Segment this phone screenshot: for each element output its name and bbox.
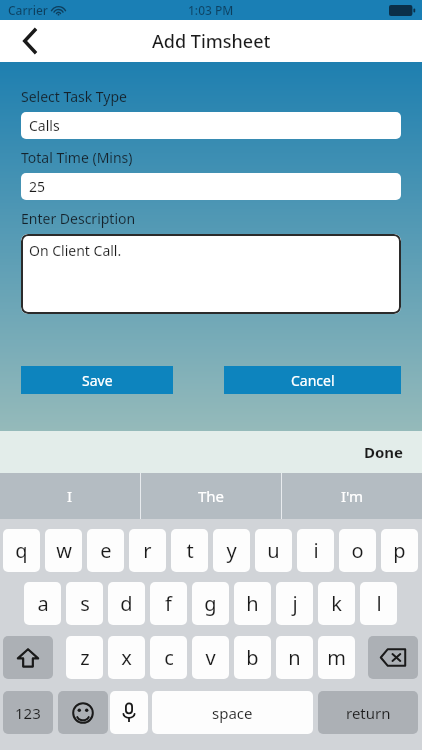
staticText: o bbox=[351, 537, 364, 564]
staticText: x bbox=[121, 644, 132, 671]
button[interactable]: o bbox=[339, 529, 376, 572]
button[interactable]: Back bbox=[10, 21, 50, 61]
staticText: m bbox=[327, 644, 346, 671]
staticText: k bbox=[331, 590, 342, 617]
staticText: q bbox=[15, 537, 28, 564]
button[interactable]: return bbox=[318, 691, 418, 734]
staticText: u bbox=[267, 537, 280, 564]
button[interactable]: I bbox=[0, 473, 140, 519]
button[interactable]: Shift bbox=[3, 636, 53, 679]
button[interactable]: Calls bbox=[21, 112, 401, 139]
staticText: Carrier bbox=[8, 2, 48, 18]
button[interactable]: space bbox=[152, 691, 313, 734]
button[interactable]: c bbox=[150, 636, 187, 679]
staticText: Enter Description bbox=[21, 209, 136, 228]
staticText: j bbox=[292, 590, 298, 617]
staticText: Done bbox=[364, 442, 404, 462]
staticText: 25 bbox=[29, 177, 46, 196]
button[interactable]: e bbox=[87, 529, 124, 572]
staticText: I'm bbox=[341, 486, 364, 506]
button[interactable]: l bbox=[360, 582, 397, 625]
staticText: Total Time (Mins) bbox=[21, 148, 133, 167]
button[interactable]: b bbox=[234, 636, 271, 679]
staticText: space bbox=[212, 703, 253, 723]
button[interactable]: h bbox=[234, 582, 271, 625]
button[interactable]: The bbox=[141, 473, 281, 519]
button[interactable]: t bbox=[171, 529, 208, 572]
staticText: On Client Call. bbox=[29, 241, 122, 260]
staticText: i bbox=[313, 537, 319, 564]
staticText: z bbox=[80, 644, 90, 671]
button[interactable]: I'm bbox=[282, 473, 422, 519]
staticText: The bbox=[198, 486, 225, 506]
button[interactable]: z bbox=[66, 636, 103, 679]
staticText: c bbox=[164, 644, 174, 671]
staticText: d bbox=[120, 590, 133, 617]
staticText: p bbox=[393, 537, 406, 564]
staticText: h bbox=[246, 590, 259, 617]
button[interactable]: 25 bbox=[21, 173, 401, 200]
staticText: t bbox=[186, 537, 194, 564]
button[interactable]: f bbox=[150, 582, 187, 625]
staticText: y bbox=[226, 537, 237, 564]
staticText: r bbox=[143, 537, 152, 564]
staticText: a bbox=[37, 590, 49, 617]
staticText: 123 bbox=[15, 703, 41, 723]
button[interactable]: k bbox=[318, 582, 355, 625]
button[interactable]: s bbox=[66, 582, 103, 625]
button[interactable]: a bbox=[24, 582, 61, 625]
button[interactable]: n bbox=[276, 636, 313, 679]
button[interactable]: Dictate bbox=[110, 691, 148, 734]
button[interactable]: w bbox=[45, 529, 82, 572]
staticText: g bbox=[204, 590, 217, 617]
staticText: Save bbox=[82, 371, 113, 390]
staticText: Calls bbox=[29, 116, 60, 135]
button[interactable]: d bbox=[108, 582, 145, 625]
staticText: f bbox=[165, 590, 172, 617]
staticText: I bbox=[67, 486, 73, 506]
staticText: Select Task Type bbox=[21, 87, 127, 106]
button[interactable]: g bbox=[192, 582, 229, 625]
staticText: return bbox=[346, 703, 391, 723]
button[interactable]: Cancel bbox=[224, 366, 401, 394]
button[interactable]: j bbox=[276, 582, 313, 625]
button[interactable]: Emoji bbox=[58, 691, 108, 734]
staticText: n bbox=[288, 644, 301, 671]
button[interactable]: Backspace bbox=[368, 636, 418, 679]
staticText: Cancel bbox=[291, 371, 335, 390]
button[interactable]: y bbox=[213, 529, 250, 572]
button[interactable]: m bbox=[318, 636, 355, 679]
button[interactable]: u bbox=[255, 529, 292, 572]
button[interactable]: q bbox=[3, 529, 40, 572]
staticText: l bbox=[376, 590, 382, 617]
button[interactable]: On Client Call. bbox=[21, 234, 401, 314]
staticText: e bbox=[100, 537, 112, 564]
button[interactable]: r bbox=[129, 529, 166, 572]
button[interactable]: i bbox=[297, 529, 334, 572]
button[interactable]: Numbers bbox=[3, 691, 53, 734]
staticText: b bbox=[246, 644, 259, 671]
staticText: 1:03 PM bbox=[188, 2, 234, 18]
staticText: v bbox=[205, 644, 216, 671]
button[interactable]: Save bbox=[21, 366, 173, 394]
button[interactable]: Done bbox=[358, 438, 410, 466]
button[interactable]: x bbox=[108, 636, 145, 679]
staticText: w bbox=[56, 537, 72, 564]
button[interactable]: v bbox=[192, 636, 229, 679]
staticText: Add Timsheet bbox=[152, 29, 271, 54]
button[interactable]: p bbox=[381, 529, 418, 572]
staticText: s bbox=[80, 590, 90, 617]
